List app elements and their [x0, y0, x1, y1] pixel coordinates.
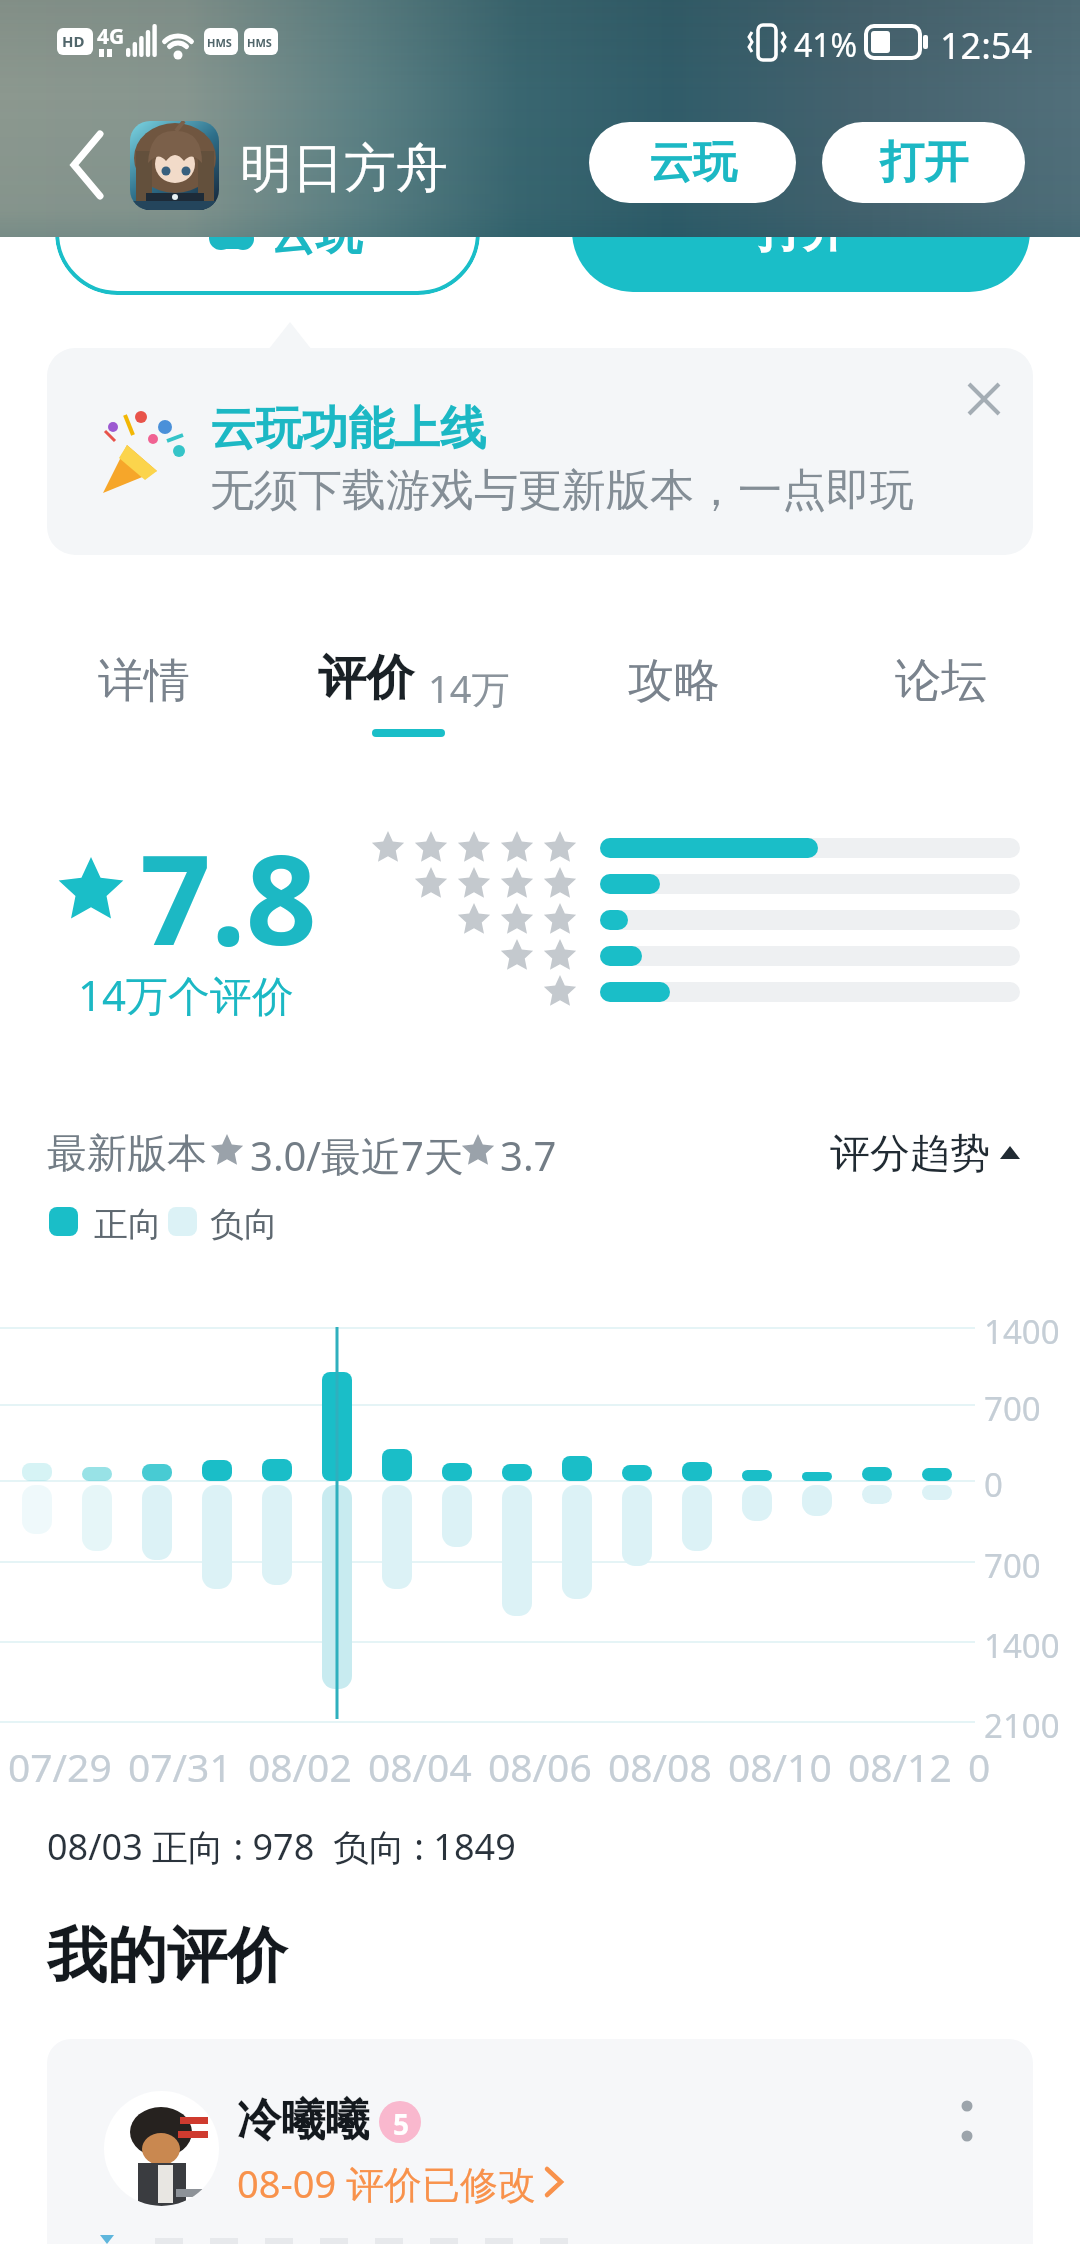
- staticText: 3.0: [250, 1128, 307, 1182]
- staticText: 14万个评价: [78, 966, 295, 1023]
- staticText: 08/06: [488, 1740, 592, 1793]
- staticText: 07/29: [8, 1740, 112, 1793]
- staticText: HD: [62, 31, 85, 51]
- staticText: 08/14: [968, 1740, 1072, 1793]
- button[interactable]: 云玩: [589, 122, 796, 203]
- staticText: 打开: [757, 202, 849, 260]
- staticText: 正向: [94, 1203, 162, 1246]
- staticText: 08/03 正向 : 978 负向 : 1849: [47, 1822, 516, 1871]
- staticText: 08/02: [248, 1740, 352, 1793]
- staticText: 3.7: [500, 1128, 557, 1182]
- button[interactable]: 打开: [822, 122, 1025, 203]
- staticText: 我的评价: [47, 1918, 287, 1994]
- button[interactable]: 攻略: [0, 0, 92, 58]
- staticText: 5: [393, 2105, 410, 2143]
- button[interactable]: 云玩: [55, 170, 480, 295]
- button[interactable]: 云玩功能上线: [47, 348, 1033, 555]
- button[interactable]: 评分趋势: [0, 0, 160, 50]
- staticText: 08-09 评价已修改: [237, 2157, 537, 2209]
- staticText: 14万: [428, 662, 510, 714]
- staticText: 700: [984, 1543, 1041, 1588]
- staticText: 08/04: [368, 1740, 472, 1793]
- staticText: 最新版本: [47, 1128, 207, 1178]
- staticText: 负向: [210, 1203, 278, 1246]
- staticText: 云玩: [649, 135, 737, 190]
- staticText: 打开: [880, 135, 968, 190]
- button[interactable]: 评价: [0, 0, 96, 60]
- staticText: 云玩功能上线: [210, 400, 486, 458]
- staticText: 明日方舟: [240, 136, 448, 202]
- button[interactable]: 详情: [0, 0, 92, 58]
- staticText: 冷曦曦: [237, 2093, 369, 2148]
- button[interactable]: 论坛: [0, 0, 92, 58]
- staticText: 700: [984, 1386, 1041, 1431]
- staticText: 1400: [984, 1309, 1060, 1354]
- staticText: 08/08: [608, 1740, 712, 1793]
- button[interactable]: 打开: [572, 170, 1030, 292]
- button[interactable]: [965, 380, 1005, 420]
- staticText: 08/12: [848, 1740, 952, 1793]
- staticText: 12:54: [940, 21, 1033, 70]
- staticText: 1400: [984, 1623, 1060, 1668]
- staticText: 云玩: [270, 205, 362, 263]
- staticText: 4G: [97, 22, 125, 51]
- staticText: 08/10: [728, 1740, 832, 1793]
- staticText: 7.8: [140, 812, 317, 981]
- staticText: 无须下载游戏与更新版本，一点即玩: [210, 463, 914, 518]
- staticText: HMS: [207, 35, 232, 50]
- staticText: 2100: [984, 1703, 1060, 1748]
- staticText: 41%: [794, 23, 858, 67]
- staticText: HMS: [247, 35, 272, 50]
- staticText: 07/31: [128, 1740, 232, 1793]
- button[interactable]: 冷曦曦: [47, 2039, 1033, 2244]
- staticText: 0: [984, 1462, 1003, 1507]
- staticText: /最近7天: [306, 1128, 464, 1183]
